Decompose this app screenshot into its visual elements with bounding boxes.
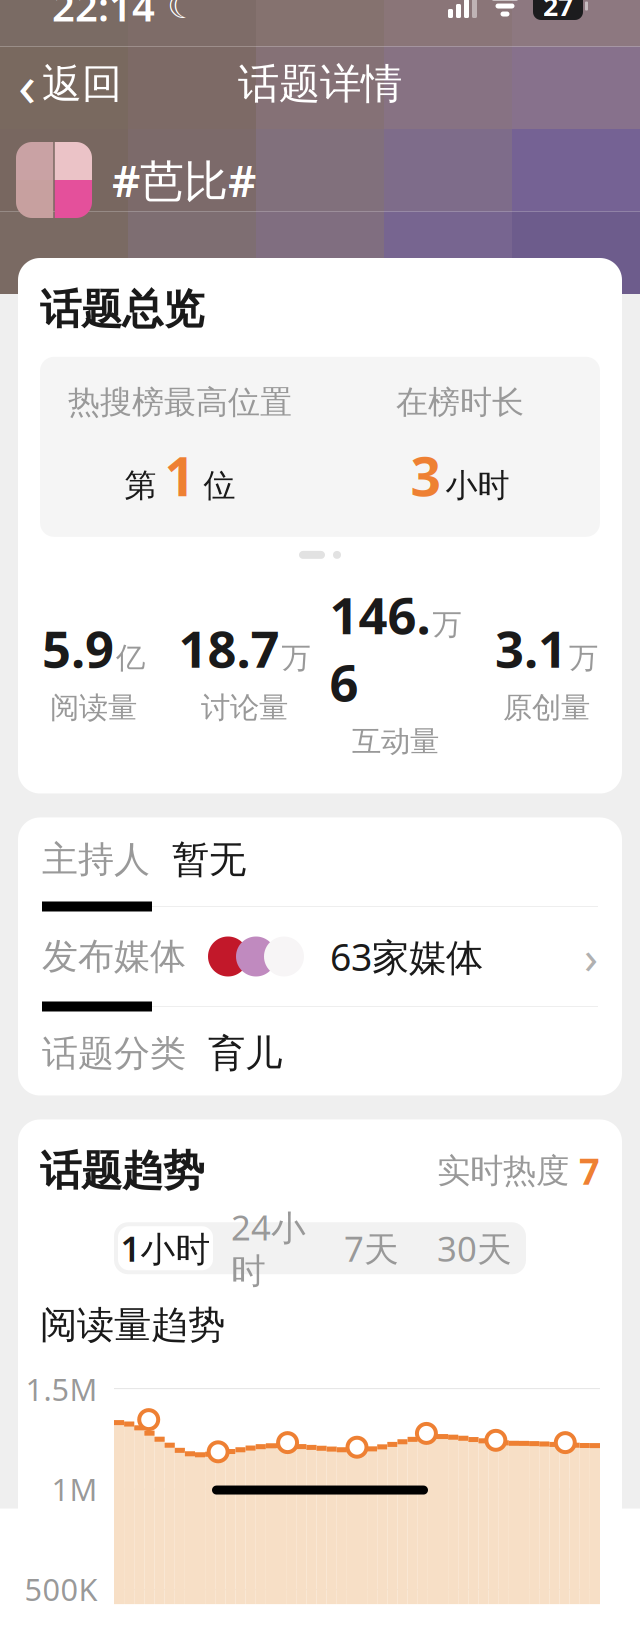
- staticText: 第: [124, 466, 156, 505]
- staticText: 发布媒体: [42, 934, 186, 979]
- button[interactable]: 7天: [320, 1222, 423, 1274]
- staticText: 7: [579, 1147, 600, 1195]
- staticText: ☾: [155, 0, 198, 26]
- staticText: 话题趋势: [40, 1145, 204, 1196]
- staticText: 话题详情: [238, 59, 402, 109]
- button[interactable]: 1小时: [114, 1222, 217, 1274]
- staticText: 话题分类: [42, 1031, 186, 1076]
- staticText: 暂无: [172, 837, 246, 882]
- staticText: 主持人: [42, 837, 150, 882]
- staticText: 返回: [42, 59, 122, 108]
- staticText: #芭比#: [112, 151, 256, 209]
- staticText: ‹: [18, 45, 36, 123]
- staticText: 500K: [24, 1569, 97, 1609]
- staticText: 话题总览: [40, 284, 204, 335]
- staticText: 30天: [437, 1225, 512, 1271]
- staticText: 阅读量: [50, 690, 137, 726]
- staticText: 5.9: [42, 614, 114, 682]
- staticText: 讨论量: [201, 690, 288, 726]
- staticText: 24小时: [231, 1204, 306, 1293]
- staticText: 1小时: [120, 1225, 210, 1271]
- staticText: 18.7: [178, 614, 279, 682]
- staticText: ›: [584, 926, 598, 987]
- staticText: 7天: [344, 1225, 399, 1271]
- staticText: 互动量: [352, 723, 439, 759]
- staticText: 万: [281, 640, 310, 676]
- staticText: 万: [569, 640, 598, 676]
- staticText: 3.1: [495, 614, 567, 682]
- button[interactable]: 发布媒体: [18, 911, 622, 1001]
- staticText: 3: [410, 440, 441, 511]
- staticText: 146.6: [329, 581, 430, 715]
- staticText: 27: [543, 0, 573, 24]
- button[interactable]: ‹: [0, 56, 140, 112]
- staticText: 1M: [51, 1469, 97, 1509]
- staticText: 亿: [116, 640, 145, 676]
- button[interactable]: #芭比#: [0, 142, 640, 218]
- staticText: 1: [164, 440, 195, 511]
- button[interactable]: 24小时: [217, 1222, 320, 1274]
- staticText: 万: [432, 606, 461, 642]
- staticText: 22:14: [52, 0, 155, 32]
- staticText: 小时: [445, 466, 509, 505]
- staticText: 热搜榜最高位置: [68, 383, 292, 422]
- staticText: 1.5M: [25, 1369, 97, 1409]
- staticText: 63家媒体: [330, 932, 483, 981]
- staticText: 在榜时长: [396, 383, 524, 422]
- staticText: 育儿: [208, 1031, 282, 1076]
- staticText: 位: [203, 466, 235, 505]
- button[interactable]: 30天: [423, 1222, 526, 1274]
- staticText: 原创量: [503, 690, 590, 726]
- staticText: 实时热度: [437, 1150, 579, 1191]
- staticText: 阅读量趋势: [40, 1302, 225, 1348]
